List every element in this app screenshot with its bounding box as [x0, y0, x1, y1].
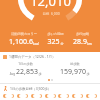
staticText: 歩いた時間	[47, 32, 64, 36]
staticText: 325	[47, 37, 60, 47]
button[interactable]: Day 5 goal	[72, 94, 83, 98]
staticText: 歩	[38, 72, 42, 76]
staticText: 分	[60, 42, 64, 46]
other: Weekly data	[3, 55, 7, 59]
button[interactable]: Day 0 goal	[3, 94, 14, 98]
button[interactable]: 総歩数	[50, 62, 100, 77]
staticText: Avg	[9, 72, 16, 76]
staticText: km	[87, 42, 92, 46]
other: Daily step goal	[3, 86, 8, 91]
staticText: 1週間のデータ（12/26 - 1/1）	[9, 54, 56, 59]
staticText: 歩	[86, 72, 90, 76]
button[interactable]: Weekly data	[3, 54, 100, 59]
button[interactable]: Day 3 goal	[45, 94, 56, 98]
button[interactable]: 1日の歩数	[0, 62, 50, 77]
button[interactable]: Day 2 goal	[31, 94, 42, 98]
staticText: 159,970	[60, 67, 86, 77]
staticText: 目標 6,000	[42, 11, 60, 16]
button[interactable]: Day 6 goal	[86, 94, 97, 98]
staticText: 活動消費カロリー	[11, 32, 37, 36]
staticText: 1日の歩数	[18, 62, 33, 66]
button[interactable]: Daily step goal	[3, 86, 100, 91]
staticText: 1日の歩数目標（3,500歩）	[10, 86, 52, 91]
staticText: 22,853	[16, 67, 38, 77]
button[interactable]: Day 4 goal	[58, 94, 69, 98]
staticText: 総歩数	[70, 62, 80, 66]
button[interactable]: Day 1 goal	[17, 94, 28, 98]
staticText: 28.9	[73, 37, 87, 47]
staticText: 歩行距離	[76, 32, 89, 36]
staticText: 1,100.6	[9, 37, 33, 47]
staticText: kcal	[33, 42, 39, 46]
staticText: 12,010	[30, 0, 71, 10]
